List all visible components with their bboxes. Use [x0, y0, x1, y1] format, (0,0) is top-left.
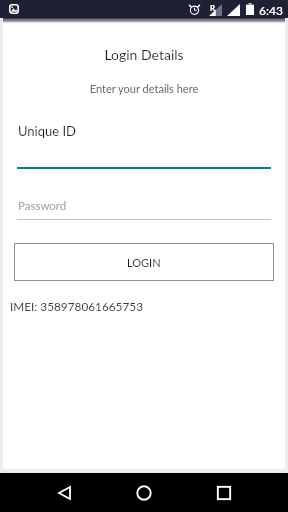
button[interactable]: Recent apps	[200, 473, 248, 512]
staticText: Login Details	[0, 46, 288, 63]
staticText: Password	[18, 199, 67, 213]
staticText: Unique ID	[18, 123, 76, 139]
button[interactable]: Home	[120, 473, 168, 512]
button[interactable]: Back	[40, 473, 88, 512]
button[interactable]: LOGIN	[14, 243, 274, 281]
staticText: R	[210, 3, 216, 13]
staticText: Enter your details here	[0, 82, 288, 95]
staticText: LOGIN	[127, 256, 161, 269]
staticText: IMEI: 358978061665753	[10, 299, 143, 313]
staticText: 6:43	[259, 3, 283, 17]
